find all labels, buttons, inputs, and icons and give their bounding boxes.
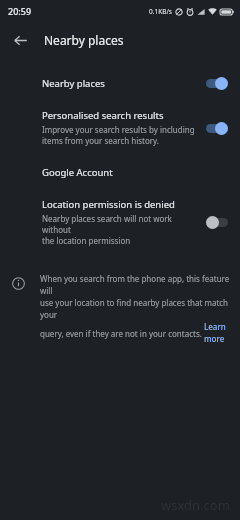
button[interactable]: Personalised search results [0, 100, 240, 155]
staticText: Personalised search results [42, 109, 164, 122]
button[interactable]: Nearby places [0, 66, 240, 100]
staticText: Location permission is denied [42, 198, 175, 211]
staticText: When you search from the phone app, this… [40, 273, 230, 297]
staticText: use your location to find nearby places … [40, 297, 230, 321]
button[interactable]: Toggle [204, 75, 230, 91]
staticText: Improve your search results by including… [42, 124, 195, 146]
button[interactable]: Toggle [204, 214, 230, 230]
staticText: query, even if they are not in your cont… [40, 328, 204, 339]
button[interactable]: Back [4, 24, 36, 56]
staticText: 0.1KB/s [149, 7, 172, 16]
staticText: 20:59 [8, 5, 32, 17]
staticText: Nearby places search will not work witho… [42, 213, 198, 246]
staticText: Learn more [204, 321, 230, 345]
button[interactable]: Toggle [204, 120, 230, 136]
staticText: Nearby places [44, 32, 124, 48]
staticText: wsxdn.com [161, 496, 230, 514]
button[interactable]: Learn more [204, 321, 230, 345]
staticText: Google Account [42, 166, 113, 179]
button[interactable]: Location permission is denied [0, 189, 240, 255]
staticText: Nearby places [42, 77, 105, 90]
